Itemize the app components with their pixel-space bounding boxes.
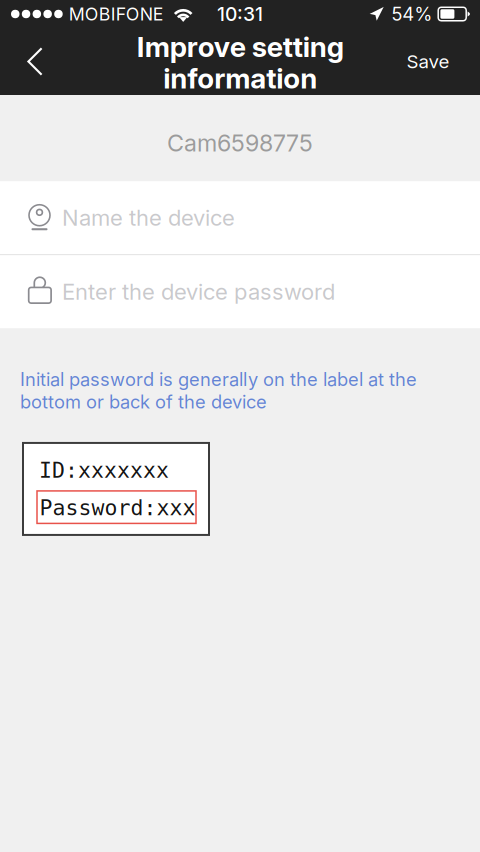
staticText: Enter the device password	[62, 278, 335, 305]
staticText: Name the device	[62, 204, 235, 231]
staticText: Password:xxx	[39, 495, 195, 520]
button[interactable]: Name the device	[0, 181, 480, 254]
staticText: Cam6598775	[167, 129, 313, 157]
staticText: Improve setting information	[136, 30, 343, 95]
staticText: Save	[406, 50, 449, 73]
staticText: 10:31	[217, 2, 263, 26]
staticText: Initial password is generally on the lab…	[20, 368, 417, 413]
staticText: ID:xxxxxxx	[39, 458, 169, 483]
staticText: 54%	[391, 3, 432, 25]
button[interactable]: Enter the device password	[0, 255, 480, 328]
button[interactable]: Back	[12, 36, 58, 86]
button[interactable]: Save	[399, 36, 457, 86]
staticText: MOBIFONE	[69, 3, 164, 25]
